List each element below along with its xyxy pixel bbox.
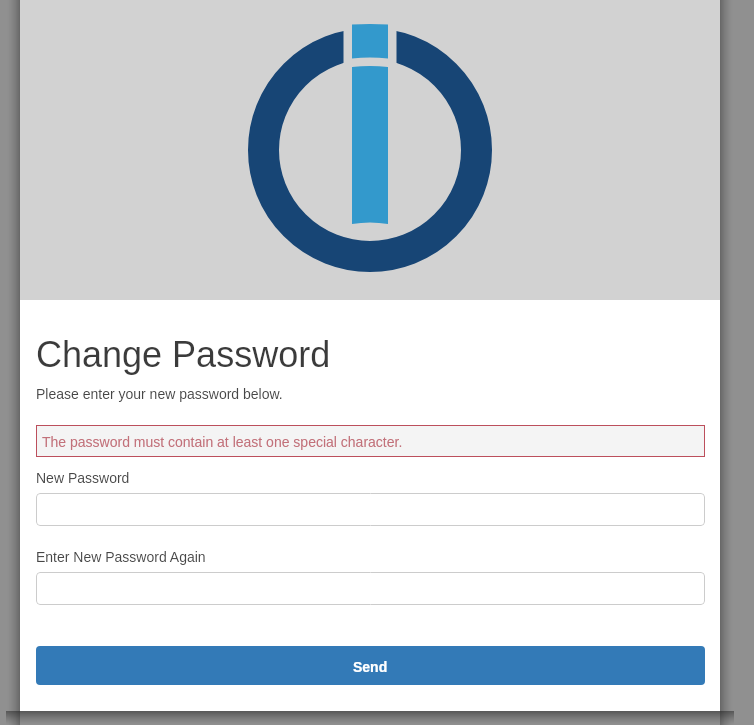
- staticText: Change Password: [36, 334, 331, 374]
- staticText: The password must contain at least one s…: [42, 434, 403, 450]
- staticText: New Password: [36, 470, 130, 486]
- button[interactable]: New Password input field: [36, 493, 705, 526]
- button[interactable]: Enter New Password Again input field: [36, 572, 705, 605]
- staticText: Send: [353, 659, 388, 675]
- staticText: Please enter your new password below.: [36, 386, 283, 402]
- staticText: Enter New Password Again: [36, 549, 206, 565]
- button[interactable]: Send: [36, 646, 705, 685]
